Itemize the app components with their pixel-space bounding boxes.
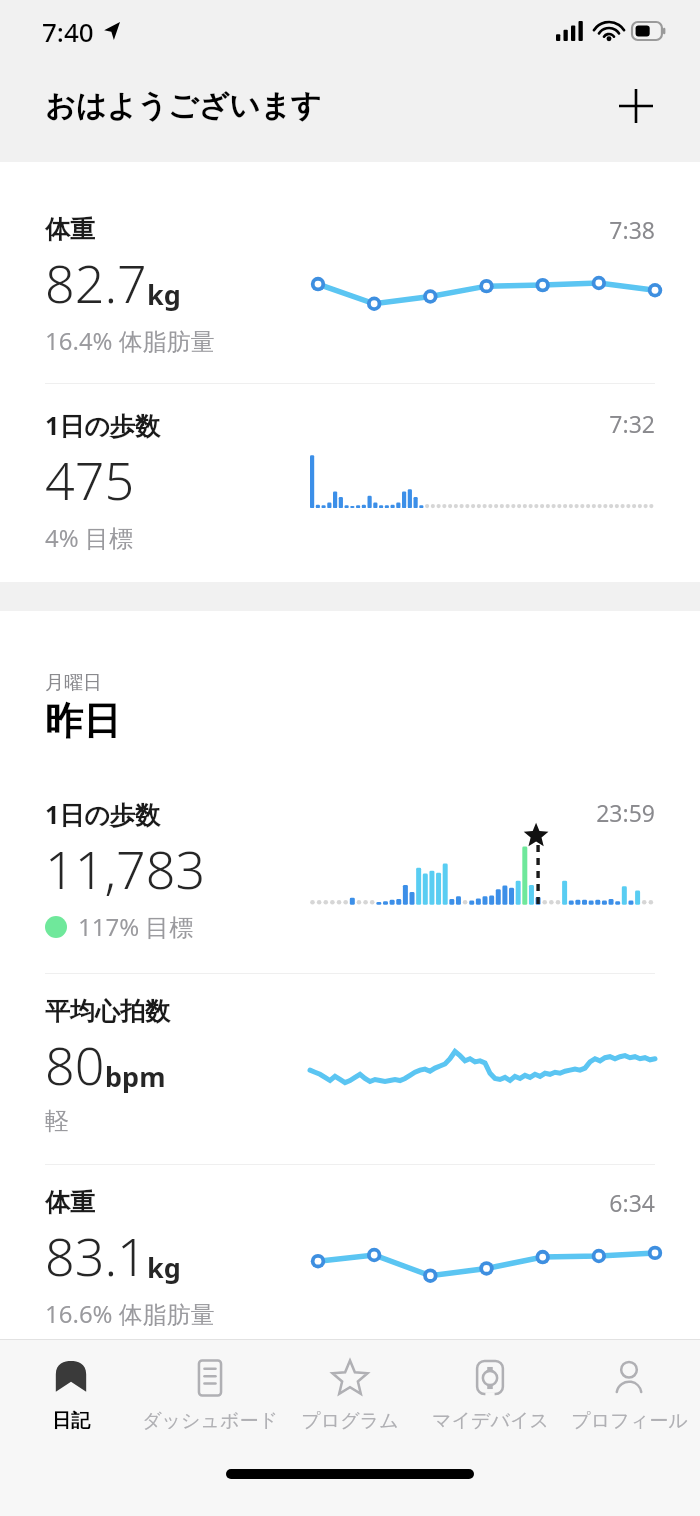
staticText: 23:59 xyxy=(596,797,655,828)
other: プロフィール xyxy=(606,1355,652,1401)
staticText: 7:40 xyxy=(42,14,94,49)
other: ダッシュボード xyxy=(187,1355,233,1401)
staticText: 7:32 xyxy=(609,408,655,439)
staticText: 7:38 xyxy=(609,214,655,245)
button[interactable]: プロフィール xyxy=(560,1349,698,1439)
other: マイデバイス xyxy=(467,1355,513,1401)
staticText: kg xyxy=(147,276,181,313)
staticText: 体重 xyxy=(45,214,95,245)
staticText: 82.7 xyxy=(45,247,147,318)
staticText: 軽 xyxy=(45,1106,69,1136)
staticText: 16.6% 体脂肪量 xyxy=(45,1297,215,1330)
button[interactable]: 体重 xyxy=(0,1187,700,1330)
other: プログラム xyxy=(327,1355,373,1401)
button[interactable]: ダッシュボード xyxy=(141,1349,279,1439)
staticText: 16.4% 体脂肪量 xyxy=(45,324,215,357)
staticText: 80 xyxy=(45,1029,105,1100)
staticText: kg xyxy=(147,1249,181,1286)
staticText: 日記 xyxy=(52,1409,90,1433)
staticText: 117% 目標 xyxy=(78,910,194,943)
staticText: プログラム xyxy=(301,1409,399,1433)
staticText: 昨日 xyxy=(45,697,121,745)
button[interactable]: 日記 xyxy=(2,1349,140,1439)
staticText: bpm xyxy=(105,1058,166,1095)
staticText: 11,783 xyxy=(45,833,206,904)
staticText: 83.1 xyxy=(45,1220,147,1291)
staticText: プロフィール xyxy=(571,1409,688,1433)
button[interactable]: 体重 xyxy=(0,214,700,357)
button[interactable]: 1日の歩数 xyxy=(0,797,700,943)
staticText: 1日の歩数 xyxy=(45,408,160,442)
staticText: ダッシュボード xyxy=(142,1409,278,1433)
button[interactable]: プログラム xyxy=(281,1349,419,1439)
staticText: おはようございます xyxy=(45,87,322,125)
staticText: 平均心拍数 xyxy=(45,996,170,1027)
button[interactable]: マイデバイス xyxy=(421,1349,559,1439)
staticText: 6:34 xyxy=(609,1187,655,1218)
staticText: 475 xyxy=(45,444,135,515)
staticText: 1日の歩数 xyxy=(45,797,160,831)
staticText: 体重 xyxy=(45,1187,95,1218)
staticText: 月曜日 xyxy=(45,671,102,695)
staticText: 4% 目標 xyxy=(45,521,133,554)
button[interactable]: 平均心拍数 xyxy=(0,996,700,1136)
other: 日記 xyxy=(48,1355,94,1401)
button[interactable]: Add xyxy=(610,80,662,132)
button[interactable]: 1日の歩数 xyxy=(0,408,700,554)
staticText: マイデバイス xyxy=(432,1409,549,1433)
